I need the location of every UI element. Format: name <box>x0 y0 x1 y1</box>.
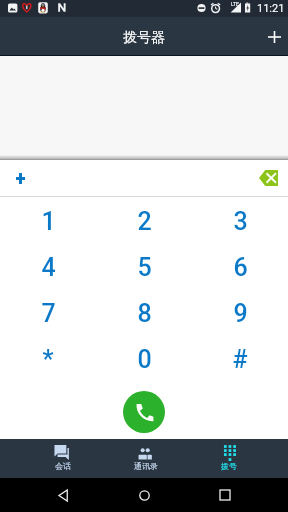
button[interactable]: Back <box>47 478 81 512</box>
staticText: 1 <box>41 207 56 236</box>
button[interactable]: 7 <box>0 289 96 335</box>
button[interactable]: 会话 <box>21 439 104 478</box>
button[interactable]: 6 <box>192 243 288 289</box>
button[interactable]: 通讯录 <box>104 439 187 478</box>
staticText: 11:21 <box>257 2 285 15</box>
staticText: 4 <box>41 253 56 282</box>
button[interactable]: Call <box>123 391 165 433</box>
staticText: LTE <box>231 1 239 7</box>
button[interactable]: 拨号 <box>187 439 270 478</box>
staticText: 9 <box>233 299 248 328</box>
staticText: 通讯录 <box>134 461 158 471</box>
staticText: * <box>42 345 54 374</box>
button[interactable]: 4 <box>0 243 96 289</box>
button[interactable]: * <box>0 335 96 381</box>
staticText: 5 <box>137 253 152 282</box>
button[interactable]: Backspace <box>248 160 288 196</box>
staticText: 拨号器 <box>123 29 165 47</box>
button[interactable]: 8 <box>96 289 192 335</box>
staticText: 7 <box>41 299 56 328</box>
staticText: 会话 <box>55 461 71 471</box>
button[interactable]: Add <box>0 160 40 196</box>
staticText: 6 <box>233 253 248 282</box>
staticText: 8 <box>137 299 152 328</box>
button[interactable]: 9 <box>192 289 288 335</box>
staticText: 拨号 <box>221 461 237 471</box>
button[interactable]: 3 <box>192 197 288 243</box>
button[interactable]: Recents <box>208 478 242 512</box>
button[interactable]: Home <box>127 478 161 512</box>
button[interactable]: # <box>192 335 288 381</box>
staticText: 3 <box>233 207 248 236</box>
button[interactable]: 5 <box>96 243 192 289</box>
button[interactable]: Add contact <box>260 17 288 55</box>
button[interactable]: 1 <box>0 197 96 243</box>
staticText: # <box>232 345 248 374</box>
button[interactable]: 0 <box>96 335 192 381</box>
button[interactable]: 2 <box>96 197 192 243</box>
staticText: 2 <box>137 207 152 236</box>
staticText: 0 <box>137 345 152 374</box>
